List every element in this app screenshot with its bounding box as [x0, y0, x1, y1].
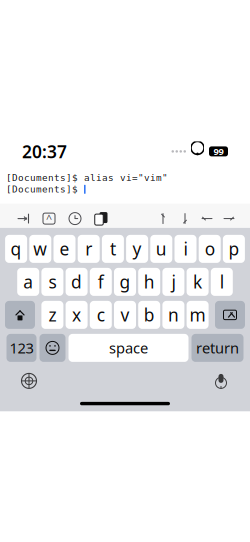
- staticText: o: [205, 237, 215, 260]
- button[interactable]: e: [53, 235, 75, 263]
- staticText: [Documents]$: [6, 184, 84, 195]
- staticText: a: [23, 270, 33, 293]
- button[interactable]: Right: [218, 205, 240, 233]
- staticText: c: [97, 303, 105, 326]
- staticText: z: [48, 303, 56, 326]
- button[interactable]: Up: [152, 205, 174, 233]
- button[interactable]: v: [114, 301, 136, 329]
- staticText: e: [59, 237, 69, 260]
- button[interactable]: k: [187, 268, 209, 296]
- button[interactable]: f: [90, 268, 112, 296]
- staticText: return: [196, 338, 239, 358]
- staticText: space: [109, 338, 148, 358]
- staticText: g: [119, 270, 130, 293]
- button[interactable]: Next keyboard: [12, 368, 46, 394]
- staticText: i: [183, 237, 187, 260]
- button[interactable]: d: [66, 268, 88, 296]
- staticText: q: [11, 237, 22, 260]
- button[interactable]: t: [102, 235, 124, 263]
- staticText: v: [120, 303, 129, 326]
- staticText: [Documents]$ alias vi="vim": [6, 172, 168, 183]
- button[interactable]: q: [5, 235, 27, 263]
- button[interactable]: w: [29, 235, 51, 263]
- staticText: p: [228, 237, 239, 260]
- button[interactable]: r: [78, 235, 100, 263]
- button[interactable]: Control: [36, 205, 62, 233]
- staticText: j: [171, 270, 175, 293]
- staticText: y: [133, 237, 142, 260]
- button[interactable]: c: [90, 301, 112, 329]
- button[interactable]: Down: [174, 205, 196, 233]
- button[interactable]: n: [162, 301, 184, 329]
- staticText: u: [156, 237, 167, 260]
- staticText: k: [193, 270, 202, 293]
- staticText: l: [220, 270, 224, 293]
- button[interactable]: 123: [6, 334, 36, 362]
- staticText: t: [110, 237, 116, 260]
- staticText: 20:37: [22, 140, 67, 163]
- button[interactable]: y: [126, 235, 148, 263]
- staticText: b: [144, 303, 155, 326]
- button[interactable]: Dictation: [204, 368, 238, 394]
- staticText: ^: [46, 211, 52, 226]
- button[interactable]: Emoji: [39, 334, 65, 362]
- button[interactable]: l: [211, 268, 233, 296]
- staticText: r: [85, 237, 92, 260]
- button[interactable]: b: [138, 301, 160, 329]
- button[interactable]: j: [162, 268, 184, 296]
- staticText: f: [98, 270, 104, 293]
- button[interactable]: o: [199, 235, 221, 263]
- button[interactable]: a: [17, 268, 39, 296]
- staticText: h: [144, 270, 155, 293]
- staticText: x: [72, 303, 81, 326]
- staticText: 123: [9, 338, 33, 358]
- button[interactable]: m: [187, 301, 209, 329]
- staticText: m: [190, 303, 206, 326]
- staticText: s: [48, 270, 56, 293]
- button[interactable]: History: [62, 205, 88, 233]
- button[interactable]: s: [41, 268, 63, 296]
- button[interactable]: z: [41, 301, 63, 329]
- button[interactable]: i: [174, 235, 196, 263]
- button[interactable]: return: [191, 334, 243, 362]
- staticText: n: [168, 303, 179, 326]
- button[interactable]: Shift: [5, 301, 35, 329]
- button[interactable]: g: [114, 268, 136, 296]
- staticText: w: [33, 237, 47, 260]
- staticText: 99: [213, 145, 223, 158]
- button[interactable]: Delete: [215, 301, 245, 329]
- staticText: d: [71, 270, 82, 293]
- button[interactable]: h: [138, 268, 160, 296]
- button[interactable]: u: [150, 235, 172, 263]
- button[interactable]: Left: [196, 205, 218, 233]
- button[interactable]: space: [68, 334, 188, 362]
- button[interactable]: Tab: [10, 205, 36, 233]
- button[interactable]: Paste: [88, 205, 114, 233]
- button[interactable]: p: [223, 235, 245, 263]
- button[interactable]: x: [66, 301, 88, 329]
